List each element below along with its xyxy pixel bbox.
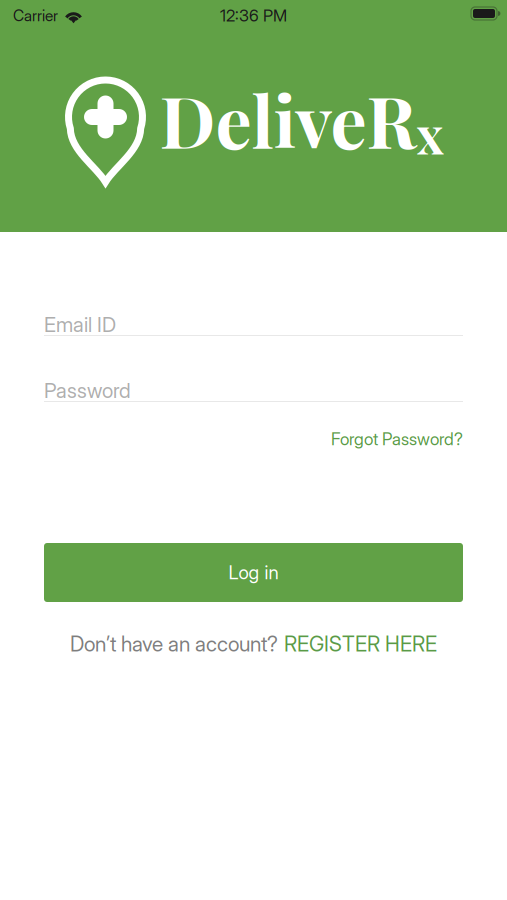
button[interactable]: Log in [44, 543, 463, 602]
staticText: Forgot Password? [331, 429, 463, 449]
staticText: Don’t have an account? [70, 631, 278, 657]
button[interactable]: REGISTER HERE [284, 631, 437, 657]
staticText: Password [44, 378, 131, 403]
staticText: Email ID [44, 312, 116, 337]
staticText: 12:36 PM [220, 5, 287, 25]
staticText: DeliveRx [159, 72, 443, 166]
staticText: Carrier [13, 6, 58, 25]
staticText: REGISTER HERE [284, 631, 437, 657]
button[interactable]: Forgot Password? [331, 429, 463, 449]
staticText: Log in [228, 561, 278, 584]
